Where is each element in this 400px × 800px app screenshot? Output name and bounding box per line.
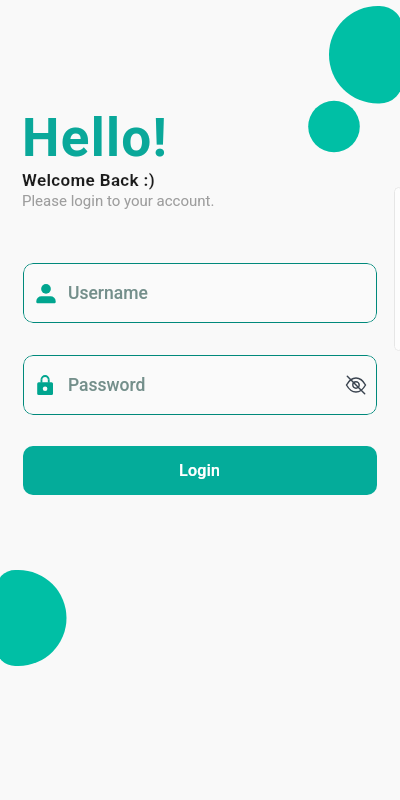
staticText: Please login to your account. (22, 192, 215, 210)
staticText: Hello! (22, 107, 169, 169)
staticText: Welcome Back :) (22, 170, 155, 190)
staticText: Login (179, 461, 221, 480)
staticText: Username (68, 283, 148, 304)
button[interactable]: Username (23, 263, 377, 323)
button[interactable]: Password (23, 355, 377, 415)
staticText: Password (68, 375, 146, 396)
button[interactable]: Show password (342, 371, 370, 399)
button[interactable]: Login (23, 446, 377, 495)
